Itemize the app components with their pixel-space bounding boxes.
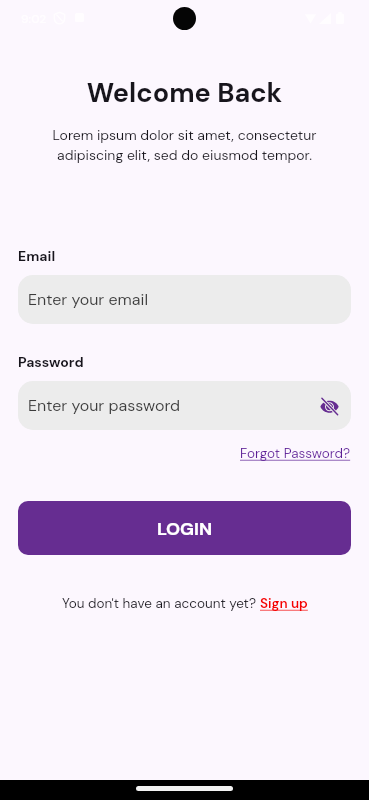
staticText: Password <box>18 353 84 371</box>
staticText: Welcome Back <box>0 75 369 110</box>
staticText: Enter your email <box>28 289 148 310</box>
button[interactable]: Enter your password <box>18 381 351 430</box>
button[interactable]: Sign up <box>260 595 308 613</box>
staticText: LOGIN <box>157 517 213 540</box>
staticText: Lorem ipsum dolor sit amet, consectetur … <box>0 126 369 164</box>
button[interactable]: Show password <box>313 390 345 422</box>
staticText: Email <box>18 247 56 265</box>
button[interactable]: LOGIN <box>18 501 351 555</box>
button[interactable]: Enter your email <box>18 275 351 324</box>
staticText: You don't have an account yet? <box>62 595 260 613</box>
staticText: Enter your password <box>28 395 181 416</box>
button[interactable]: Forgot Password? <box>240 445 351 463</box>
